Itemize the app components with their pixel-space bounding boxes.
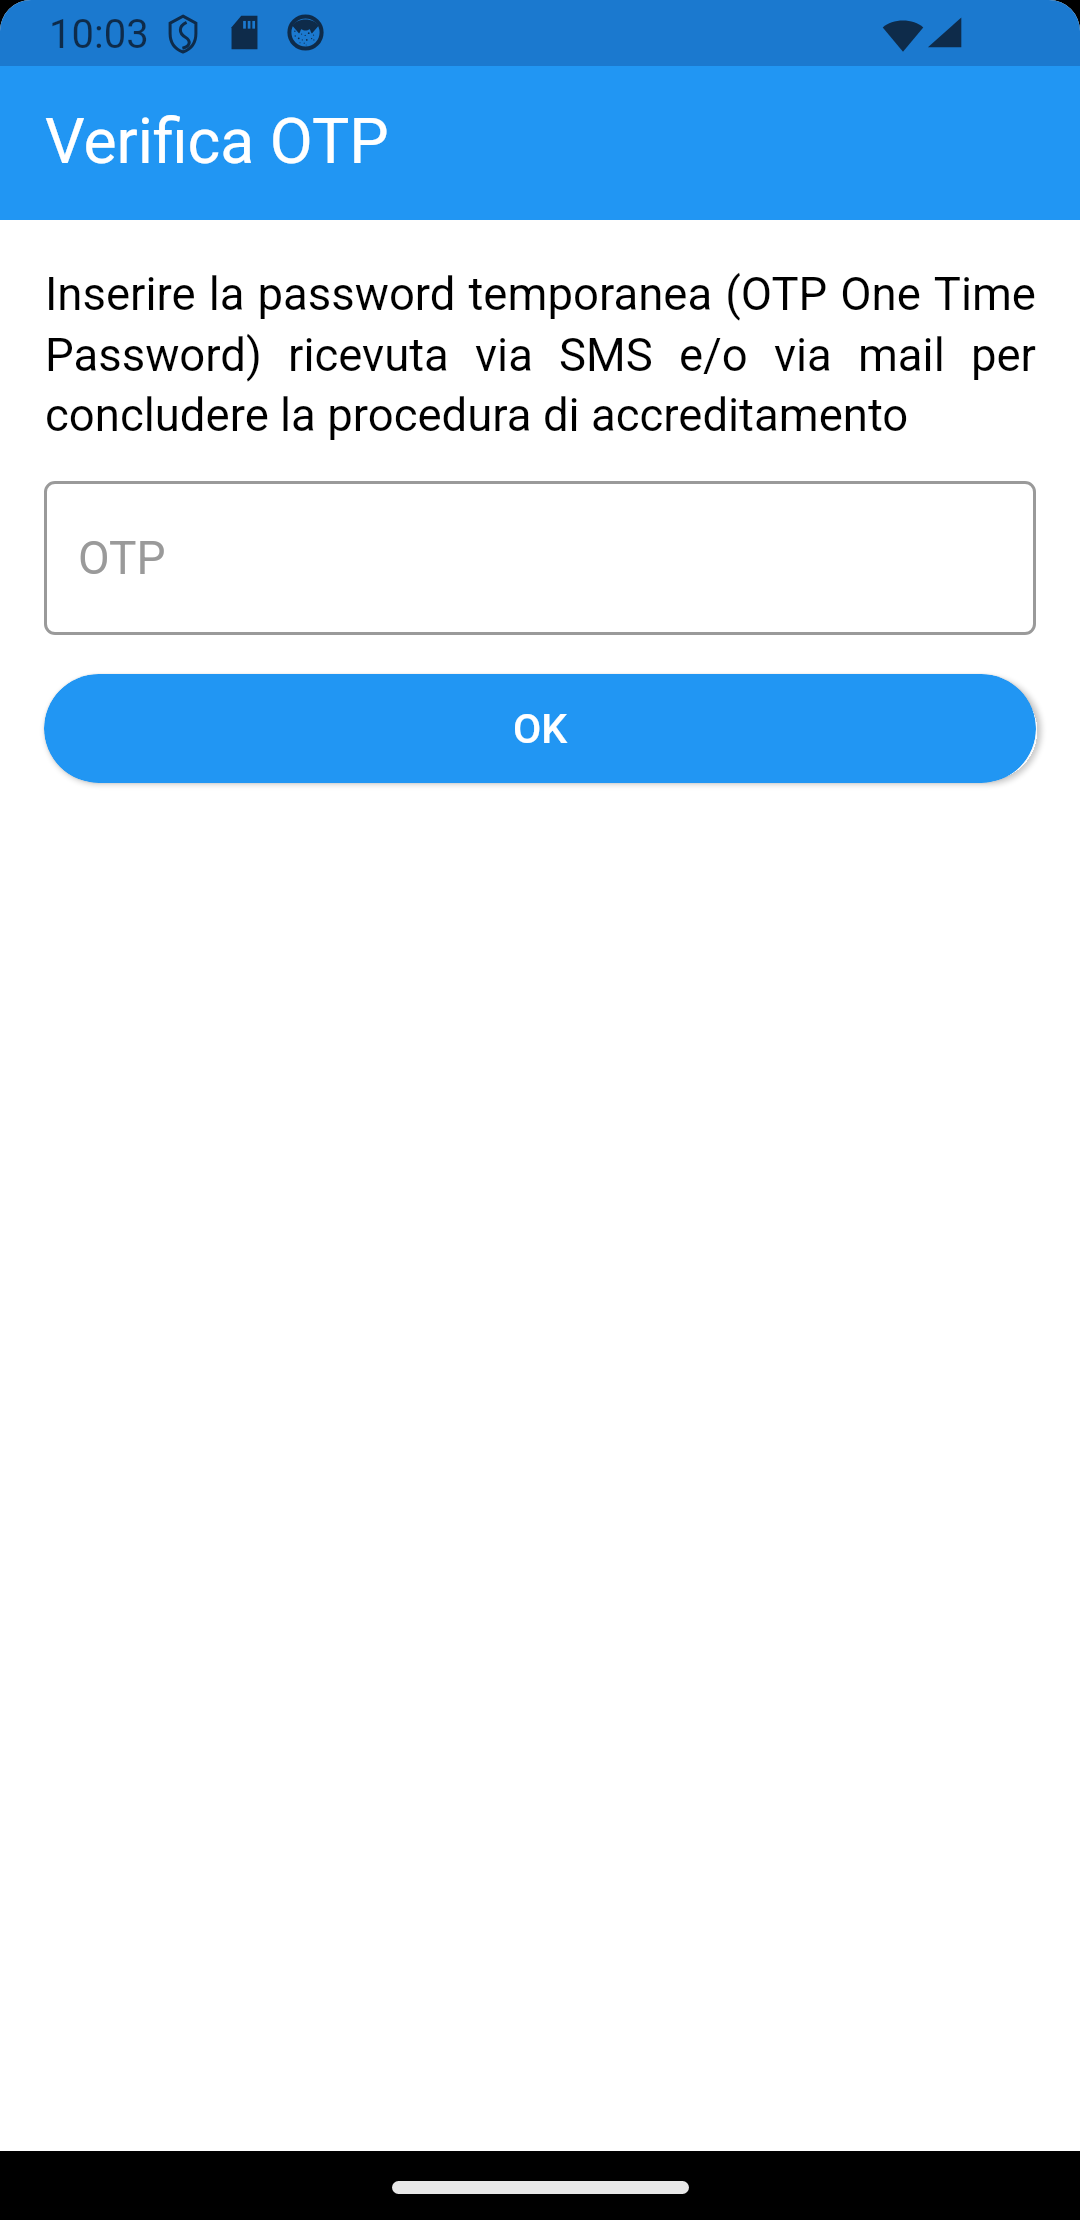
staticText: 10:03 [49,11,149,58]
staticText: Verifica OTP [45,105,389,178]
staticText: Inserire la password temporanea (OTP One… [45,268,1036,442]
staticText: OTP [78,531,166,585]
other: Home gesture [392,2181,689,2194]
staticText: OK [513,705,568,753]
button[interactable]: OK [44,674,1036,783]
button[interactable]: OTP [44,481,1036,635]
